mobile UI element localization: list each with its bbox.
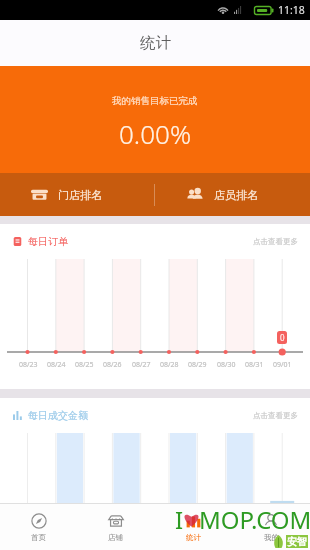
staticText: 店铺 xyxy=(108,533,123,542)
staticText: 08/30 xyxy=(217,360,236,370)
staticText: 安智 xyxy=(287,535,307,548)
staticText: 每日订单 xyxy=(28,235,68,248)
button[interactable]: 我的 xyxy=(232,504,310,550)
staticText: 08/23 xyxy=(19,360,38,370)
staticText: 11:18 xyxy=(278,3,305,17)
staticText: 08/31 xyxy=(245,360,264,370)
button[interactable]: 门店排名 xyxy=(0,173,154,216)
button[interactable]: 店铺 xyxy=(77,504,154,550)
button[interactable]: 统计 xyxy=(154,504,232,550)
staticText: 0.00% xyxy=(119,116,191,151)
staticText: 08/26 xyxy=(103,360,122,370)
staticText: 每日成交金额 xyxy=(28,409,88,422)
staticText: 店员排名 xyxy=(214,188,258,202)
staticText: 08/27 xyxy=(132,360,151,370)
button[interactable]: 店员排名 xyxy=(155,173,310,216)
staticText: 点击查看更多 xyxy=(253,237,298,246)
button[interactable]: 首页 xyxy=(0,504,77,550)
staticText: 点击查看更多 xyxy=(253,411,298,420)
staticText: 我的销售目标已完成 xyxy=(112,95,198,107)
staticText: 首页 xyxy=(31,533,46,542)
staticText: I xyxy=(175,503,184,536)
staticText: 我的 xyxy=(264,533,279,542)
staticText: 门店排名 xyxy=(58,188,102,202)
staticText: 08/25 xyxy=(75,360,94,370)
staticText: 08/24 xyxy=(47,360,66,370)
staticText: 09/01 xyxy=(273,360,292,370)
staticText: 08/29 xyxy=(188,360,207,370)
staticText: 0 xyxy=(280,332,285,343)
staticText: 08/28 xyxy=(160,360,179,370)
staticText: 统计 xyxy=(186,533,201,542)
staticText: 统计 xyxy=(140,33,171,53)
button[interactable]: 点击查看更多 xyxy=(253,411,298,420)
staticText: MOP.COM xyxy=(199,503,310,536)
button[interactable]: 点击查看更多 xyxy=(253,237,298,246)
